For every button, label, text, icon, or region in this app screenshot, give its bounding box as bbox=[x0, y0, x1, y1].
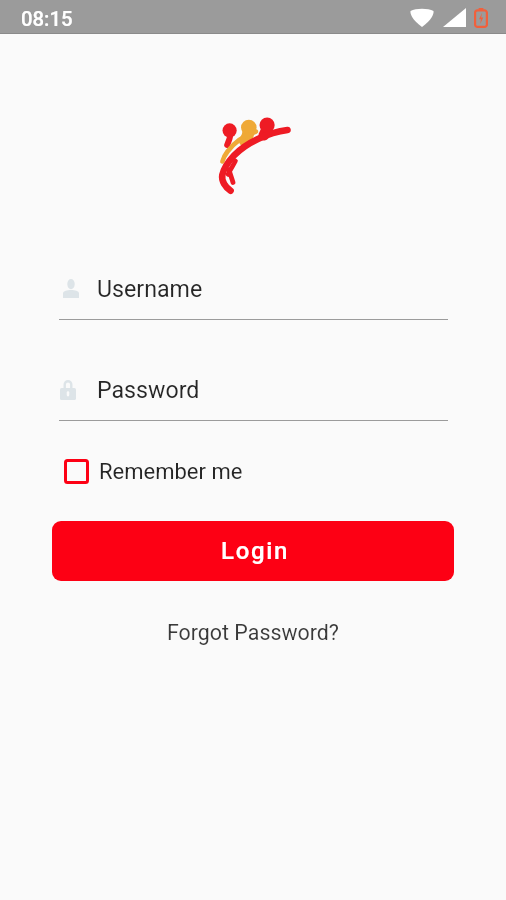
button[interactable]: Forgot Password? bbox=[159, 616, 347, 649]
button[interactable]: Login bbox=[52, 521, 454, 581]
staticText: Username bbox=[97, 275, 203, 302]
staticText: Login bbox=[221, 537, 290, 565]
staticText: 08:15 bbox=[21, 7, 73, 31]
button[interactable]: Remember me bbox=[59, 454, 249, 490]
staticText: Remember me bbox=[99, 459, 243, 485]
staticText: Password bbox=[97, 376, 200, 403]
